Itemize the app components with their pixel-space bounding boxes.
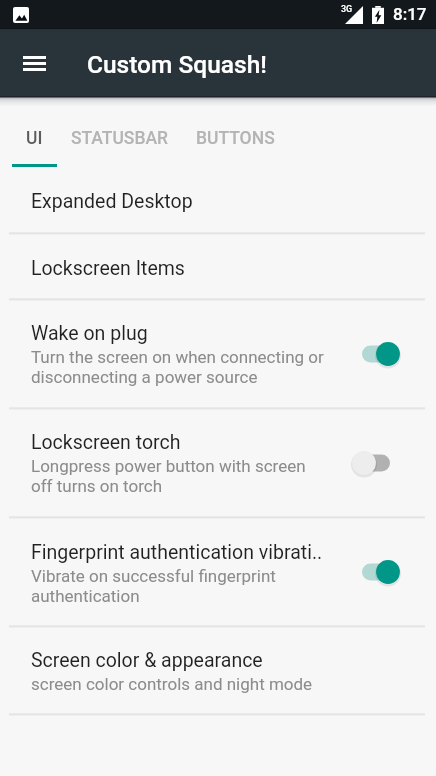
button[interactable]: STATUSBAR xyxy=(57,96,182,170)
button[interactable]: Switch on xyxy=(360,557,404,587)
button[interactable]: Wake on plug xyxy=(0,300,436,408)
staticText: Fingerprint authentication vibrati.. xyxy=(31,541,323,564)
staticText: 3G xyxy=(341,4,353,15)
staticText: Custom Squash! xyxy=(87,50,267,79)
button[interactable]: Expanded Desktop xyxy=(0,170,436,233)
staticText: Longpress power button with screen off t… xyxy=(31,456,306,496)
staticText: STATUSBAR xyxy=(71,128,169,149)
button[interactable]: Screen color & appearance xyxy=(0,627,436,714)
staticText: Expanded Desktop xyxy=(31,190,193,213)
staticText: Screen color & appearance xyxy=(31,649,263,672)
button[interactable]: BUTTONS xyxy=(182,96,288,170)
button[interactable]: Open navigation menu xyxy=(11,40,57,86)
staticText: Lockscreen torch xyxy=(31,431,181,454)
staticText: 8:17 xyxy=(393,4,427,24)
staticText: screen color controls and night mode xyxy=(31,674,313,694)
button[interactable]: Lockscreen Items xyxy=(0,234,436,299)
button[interactable]: Switch on xyxy=(360,339,404,369)
staticText: Lockscreen Items xyxy=(31,257,185,280)
staticText: UI xyxy=(26,128,43,149)
staticText: Wake on plug xyxy=(31,322,148,345)
button[interactable]: Fingerprint authentication vibrati.. xyxy=(0,518,436,626)
staticText: BUTTONS xyxy=(196,128,275,149)
button[interactable]: Switch off xyxy=(360,448,404,478)
staticText: Turn the screen on when connecting or di… xyxy=(31,347,324,387)
button[interactable]: UI xyxy=(12,96,57,170)
staticText: Vibrate on successful fingerprint authen… xyxy=(31,566,276,606)
button[interactable]: Lockscreen torch xyxy=(0,409,436,517)
